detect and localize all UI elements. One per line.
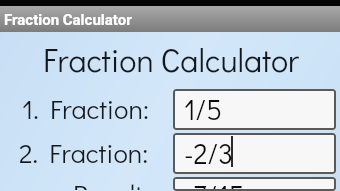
staticText: -2/3	[184, 135, 233, 172]
staticText: Result:	[73, 176, 149, 190]
staticText: 2. Fraction:	[19, 135, 149, 170]
staticText: 1/5	[184, 91, 222, 128]
staticText: Fraction Calculator	[43, 38, 300, 80]
button[interactable]: 1/5	[173, 89, 336, 130]
staticText: Fraction Calculator	[4, 11, 132, 29]
staticText: 1. Fraction:	[22, 91, 149, 126]
staticText: -7/15	[184, 177, 245, 191]
button[interactable]: -7/15	[173, 177, 336, 191]
button[interactable]: -2/3	[173, 133, 336, 174]
